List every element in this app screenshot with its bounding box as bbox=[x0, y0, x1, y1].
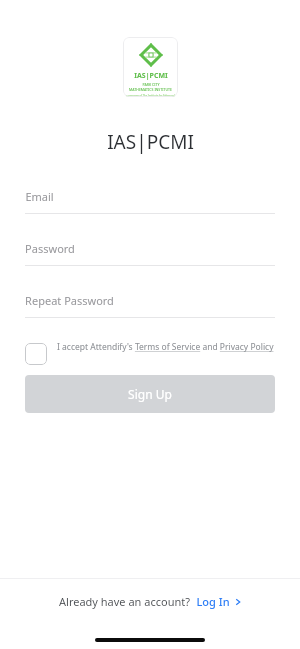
staticText: Password bbox=[25, 241, 75, 256]
staticText: I accept Attendify's Terms of Service an… bbox=[57, 341, 274, 353]
button[interactable]: Email bbox=[25, 189, 275, 214]
staticText: Email bbox=[25, 189, 54, 204]
staticText: IAS|PCMI bbox=[107, 129, 194, 155]
button[interactable]: Repeat Password bbox=[25, 293, 275, 318]
button[interactable]: Already have an account? bbox=[53, 590, 248, 613]
button[interactable]: Sign Up bbox=[25, 375, 275, 413]
staticText: Log In bbox=[196, 594, 230, 609]
staticText: Repeat Password bbox=[25, 293, 114, 308]
other: Accept terms checkbox bbox=[25, 343, 47, 365]
staticText: MATHEMATICS INSTITUTE bbox=[129, 87, 172, 92]
staticText: a program of The Institute for Advanced … bbox=[123, 94, 178, 97]
staticText: IAS|PCMI bbox=[134, 71, 168, 81]
button[interactable]: Password bbox=[25, 241, 275, 266]
staticText: Sign Up bbox=[128, 386, 172, 402]
staticText: PARK CITY bbox=[142, 82, 160, 87]
button[interactable]: Accept terms checkbox bbox=[25, 341, 275, 363]
staticText: Already have an account? bbox=[59, 594, 190, 609]
